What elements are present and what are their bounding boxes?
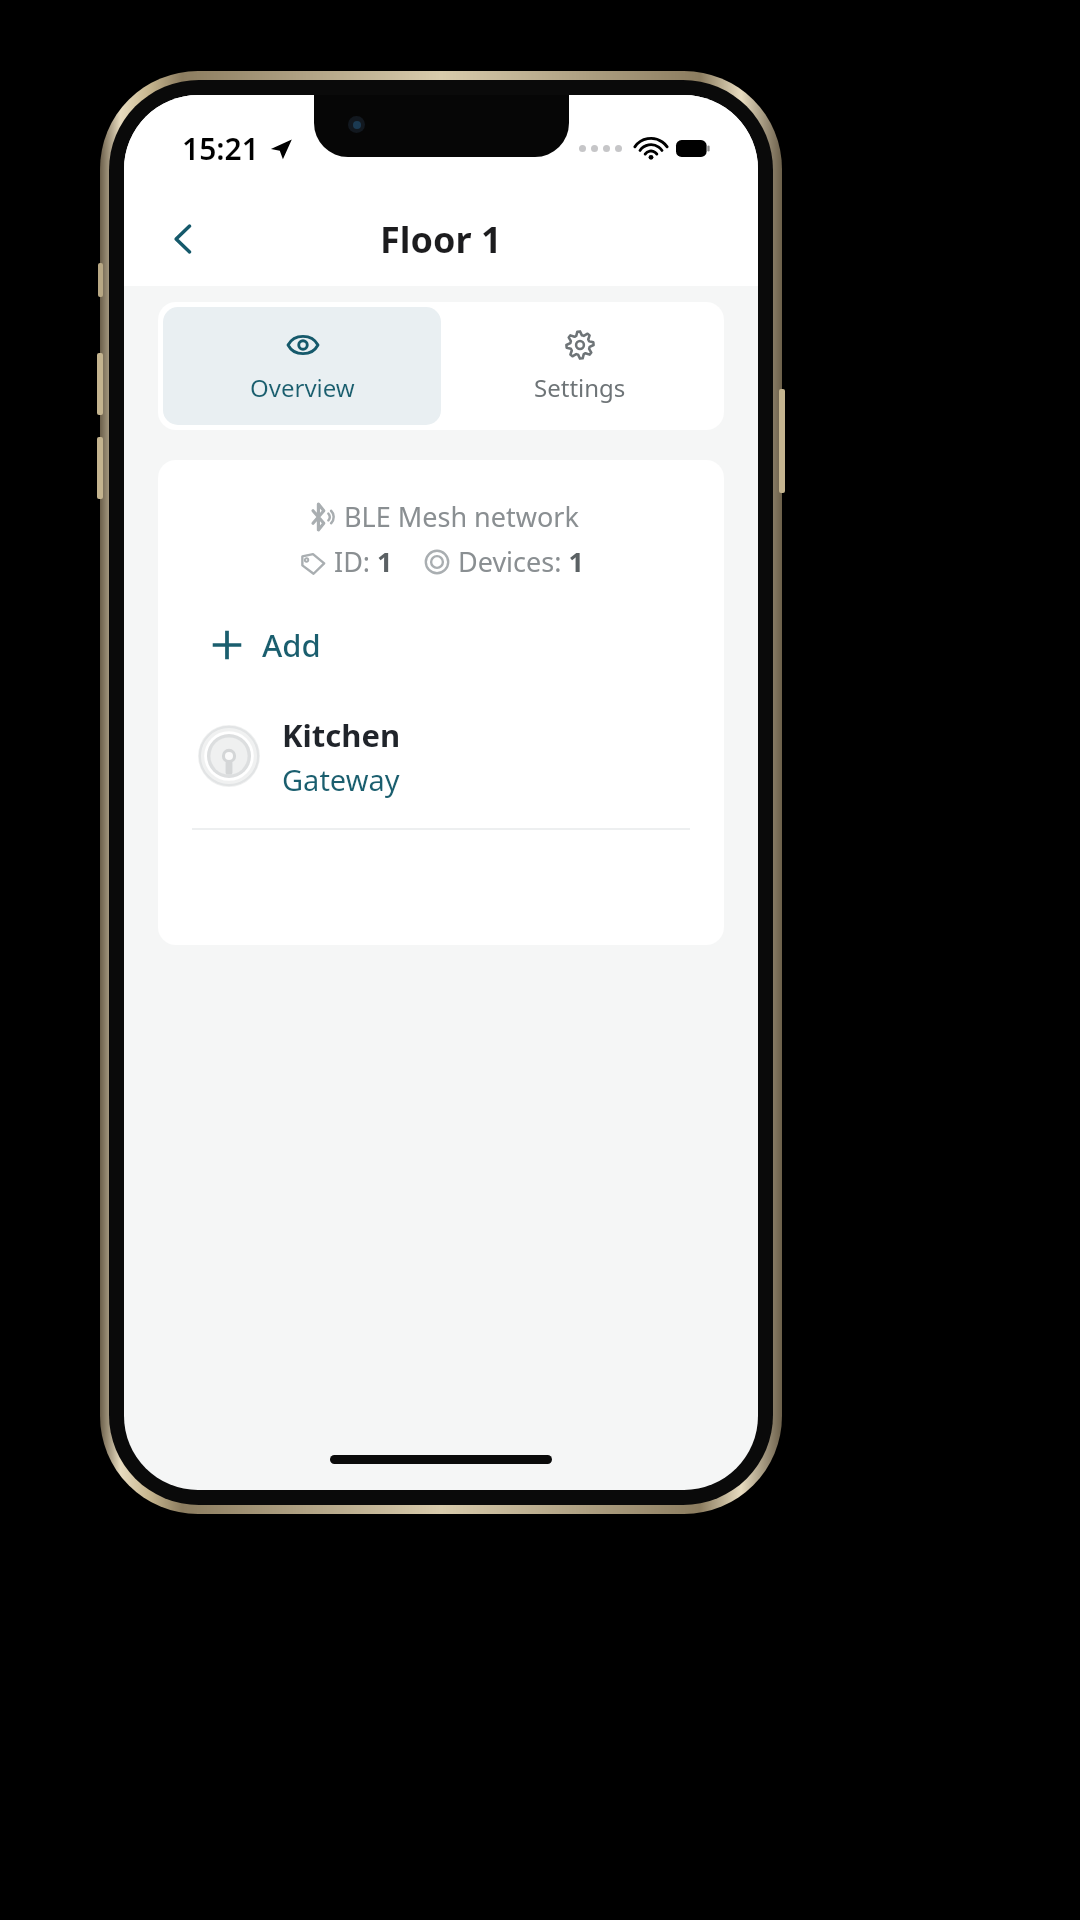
staticText: BLE Mesh network: [344, 498, 579, 535]
staticText: Kitchen: [282, 714, 401, 756]
staticText: ID: 1: [334, 543, 393, 580]
staticText: Overview: [250, 371, 355, 404]
button[interactable]: Overview: [163, 307, 441, 425]
button[interactable]: Add: [202, 612, 329, 678]
button[interactable]: Kitchen: [158, 704, 724, 808]
staticText: Floor 1: [380, 215, 502, 264]
staticText: Devices: 1: [458, 543, 584, 580]
staticText: Settings: [534, 371, 626, 404]
button[interactable]: Settings: [441, 307, 719, 425]
button[interactable]: Back: [150, 206, 216, 272]
staticText: Add: [262, 624, 321, 666]
staticText: Gateway: [282, 760, 400, 799]
staticText: 15:21: [182, 128, 259, 169]
